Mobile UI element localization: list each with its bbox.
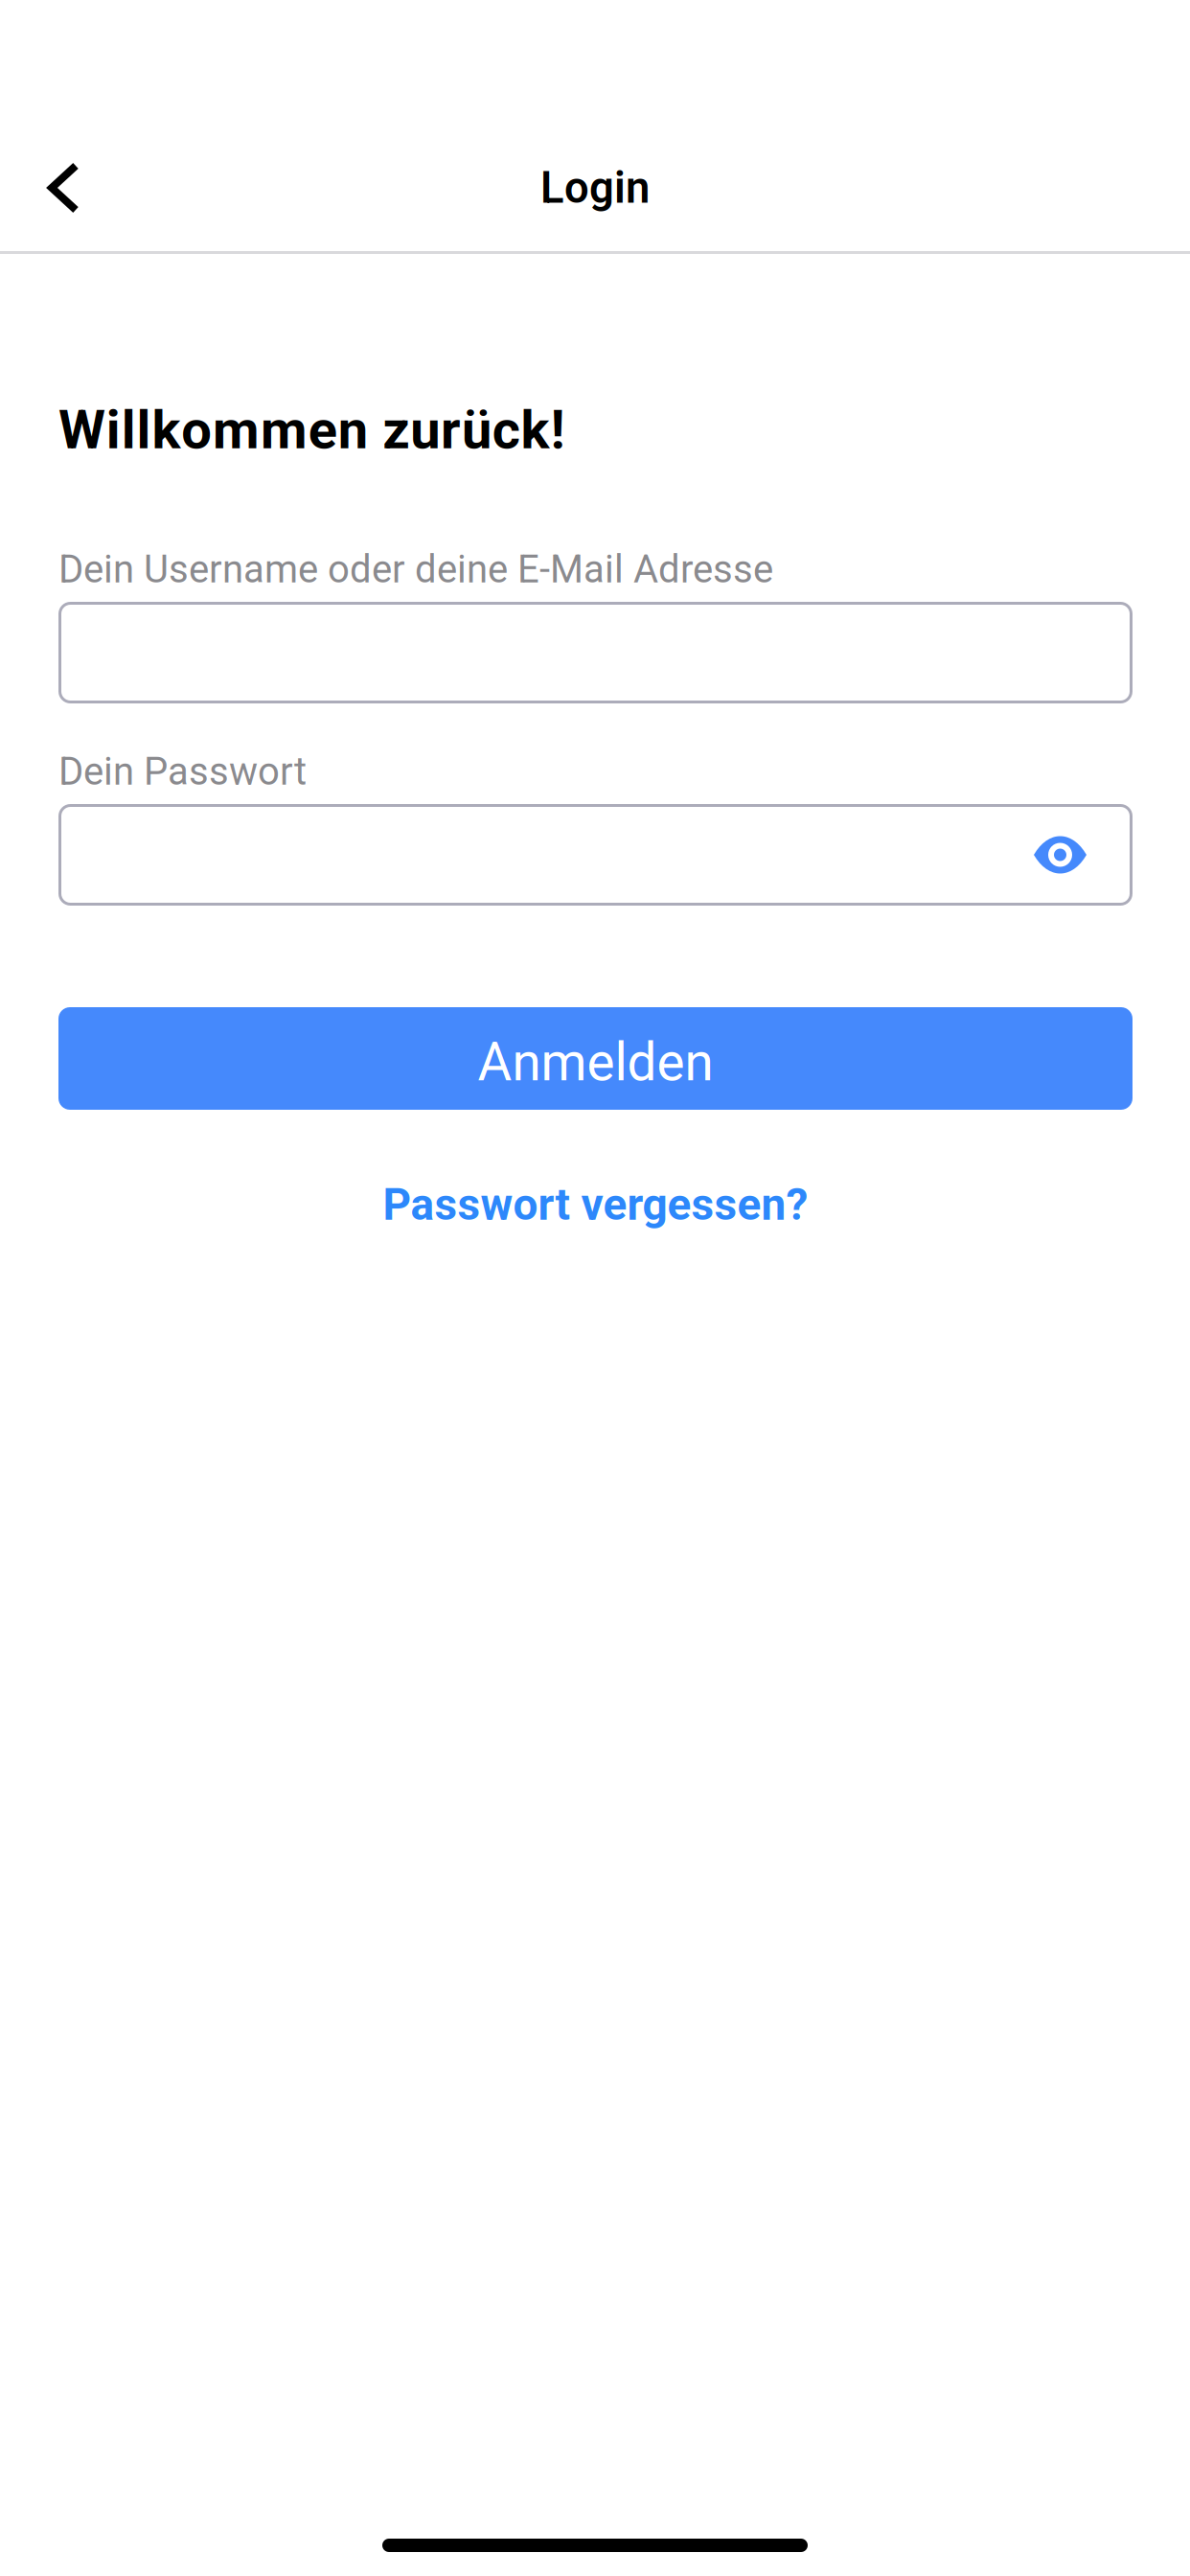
staticText: Willkommen zurück! bbox=[58, 398, 565, 461]
textField[interactable]: Dein Username oder deine E-Mail Adresse bbox=[58, 602, 1133, 703]
staticText: Dein Username oder deine E-Mail Adresse bbox=[58, 547, 773, 592]
secureTextField[interactable]: Dein Passwort bbox=[58, 804, 1133, 906]
staticText: Dein Passwort bbox=[58, 749, 307, 794]
staticText: Login bbox=[540, 162, 650, 213]
button[interactable]: Anmelden bbox=[58, 1007, 1133, 1110]
navigationBar: Login bbox=[0, 0, 1190, 254]
staticText: Passwort vergessen? bbox=[383, 1179, 808, 1230]
button[interactable]: Passwort vergessen? bbox=[360, 1165, 831, 1244]
button[interactable]: Back bbox=[0, 135, 127, 241]
staticText: Anmelden bbox=[478, 1032, 713, 1093]
button[interactable]: Show password bbox=[1011, 804, 1133, 906]
